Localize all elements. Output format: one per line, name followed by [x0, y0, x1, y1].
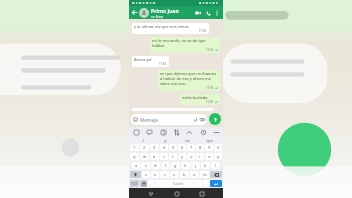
button[interactable]: Send: [209, 113, 221, 125]
button[interactable]: k: [201, 162, 210, 169]
staticText: 8: [199, 145, 202, 150]
button[interactable]: i: [196, 153, 204, 160]
staticText: n: [193, 172, 196, 177]
button[interactable]: y la última vez que nos vimos: [132, 23, 209, 34]
staticText: 6: [181, 145, 184, 150]
button[interactable]: e: [150, 153, 159, 160]
button[interactable]: r: [160, 153, 168, 160]
button[interactable]: 1: [130, 144, 139, 151]
button[interactable]: ,: [148, 180, 154, 187]
button[interactable]: n: [190, 171, 199, 178]
staticText: 17:54: [199, 29, 207, 33]
staticText: r: [163, 154, 165, 159]
button[interactable]: es que dijimos que no íbamos a hablar de…: [158, 70, 220, 91]
button[interactable]: Backspace: [210, 171, 222, 178]
button[interactable]: 7: [187, 144, 195, 151]
button[interactable]: I: [132, 138, 154, 143]
button[interactable]: p: [154, 138, 176, 143]
button[interactable]: Space: [155, 180, 202, 187]
staticText: y la última vez que nos vimos: [134, 24, 189, 29]
button[interactable]: Back: [130, 8, 139, 17]
staticText: .: [205, 181, 207, 186]
button[interactable]: b: [180, 171, 189, 178]
staticText: Español: [173, 182, 184, 186]
button[interactable]: q: [130, 153, 139, 160]
button[interactable]: t: [169, 153, 177, 160]
button[interactable]: s: [141, 162, 150, 169]
button[interactable]: f: [161, 162, 170, 169]
button[interactable]: Home: [172, 189, 181, 198]
button[interactable]: z: [142, 171, 150, 178]
staticText: j: [195, 163, 197, 168]
button[interactable]: que: [198, 138, 220, 143]
button[interactable]: u: [187, 153, 195, 160]
button[interactable]: c: [160, 171, 169, 178]
button[interactable]: p: [214, 153, 222, 160]
staticText: u: [190, 154, 193, 159]
button[interactable]: 6: [178, 144, 186, 151]
button[interactable]: Keyboard tool 3: [159, 128, 167, 136]
staticText: k: [204, 163, 207, 168]
staticText: 17:54: [159, 62, 167, 66]
staticText: 7: [190, 145, 193, 150]
staticText: h: [184, 163, 187, 168]
staticText: w: [143, 154, 147, 159]
button[interactable]: g: [171, 162, 180, 169]
button[interactable]: 4: [160, 144, 168, 151]
staticText: ,: [150, 181, 152, 186]
button[interactable]: 2: [140, 144, 149, 151]
staticText: i: [199, 154, 201, 159]
staticText: y: [181, 154, 184, 159]
staticText: o: [208, 154, 211, 159]
button[interactable]: .: [203, 180, 209, 187]
button[interactable]: y: [178, 153, 186, 160]
staticText: no: [185, 138, 190, 143]
button[interactable]: More options: [213, 9, 221, 17]
staticText: d: [154, 163, 157, 168]
button[interactable]: no lo recuerdo, no se de que hablas: [150, 37, 220, 53]
button[interactable]: Video call: [193, 8, 203, 18]
button[interactable]: o: [205, 153, 213, 160]
button[interactable]: 5: [169, 144, 177, 151]
button[interactable]: Mensaje: [131, 114, 207, 125]
button[interactable]: Recent apps: [197, 189, 206, 198]
button[interactable]: Keyboard tool 1: [132, 128, 140, 136]
staticText: es que dijimos que no íbamos a hablar de…: [160, 71, 218, 86]
staticText: s: [145, 163, 147, 168]
button[interactable]: Keyboard tool 6: [199, 128, 207, 136]
button[interactable]: estás burlado: [180, 94, 220, 105]
button[interactable]: w: [140, 153, 149, 160]
button[interactable]: 0: [214, 144, 222, 151]
button[interactable]: no: [176, 138, 198, 143]
button[interactable]: d: [151, 162, 160, 169]
button[interactable]: Keyboard tool 4: [172, 128, 180, 136]
button[interactable]: l: [211, 162, 220, 169]
button[interactable]: a: [132, 162, 140, 169]
button[interactable]: x: [151, 171, 159, 178]
button[interactable]: v: [170, 171, 179, 178]
button[interactable]: Back: [146, 189, 155, 198]
button[interactable]: Ahora ya!: [132, 56, 169, 67]
button[interactable]: h: [181, 162, 190, 169]
staticText: estás burlado: [182, 95, 208, 100]
button[interactable]: Keyboard tool 7: [212, 128, 220, 136]
staticText: I: [142, 138, 144, 143]
button[interactable]: Call: [203, 8, 213, 18]
button[interactable]: j: [191, 162, 200, 169]
staticText: 5: [172, 145, 175, 150]
staticText: f: [165, 163, 167, 168]
staticText: p: [164, 138, 167, 143]
button[interactable]: 9: [205, 144, 213, 151]
button[interactable]: 8: [196, 144, 204, 151]
button[interactable]: Primo Juan: [151, 7, 193, 18]
button[interactable]: Shift: [130, 171, 141, 178]
staticText: 9: [208, 145, 211, 150]
button[interactable]: Keyboard tool 5: [185, 128, 193, 136]
button[interactable]: m: [200, 171, 209, 178]
button[interactable]: Emoji: [140, 180, 147, 187]
button[interactable]: Keyboard tool 2: [145, 128, 153, 136]
button[interactable]: 3: [150, 144, 159, 151]
button[interactable]: Symbols: [130, 180, 139, 187]
button[interactable]: Enter: [210, 180, 222, 187]
